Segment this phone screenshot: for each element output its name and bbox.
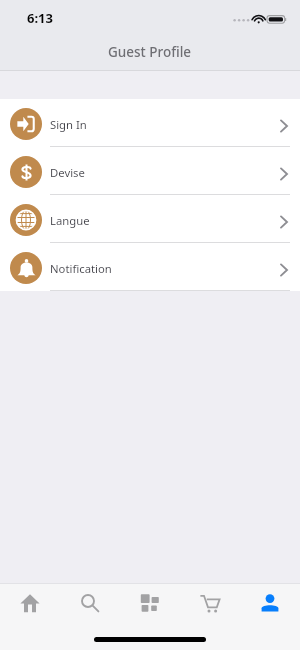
- staticText: 6:13: [27, 9, 53, 27]
- button[interactable]: Categories: [120, 583, 180, 622]
- button[interactable]: Langue: [0, 195, 300, 243]
- button[interactable]: Cart: [180, 583, 240, 622]
- button[interactable]: Sign In: [0, 99, 300, 147]
- staticText: Notification: [50, 261, 112, 276]
- staticText: Guest Profile: [108, 43, 192, 61]
- button[interactable]: Search: [60, 583, 120, 622]
- staticText: Sign In: [50, 117, 87, 132]
- button[interactable]: Home: [0, 583, 60, 622]
- staticText: Devise: [50, 165, 85, 180]
- button[interactable]: Notification: [0, 243, 300, 291]
- button[interactable]: Devise: [0, 147, 300, 195]
- button[interactable]: Profile: [240, 583, 300, 622]
- staticText: Langue: [50, 213, 90, 228]
